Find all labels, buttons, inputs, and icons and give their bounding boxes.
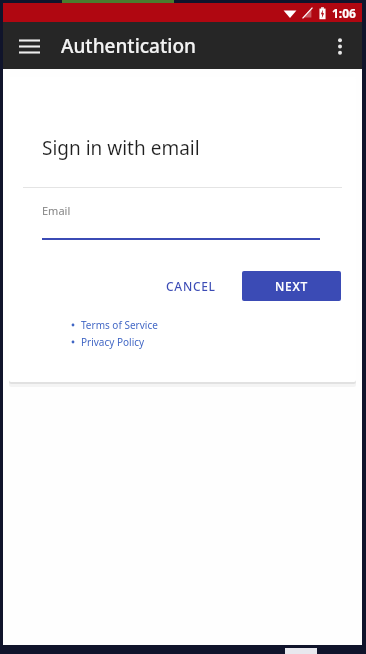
button[interactable]: Terms of Service (69, 318, 158, 332)
staticText: Authentication (61, 33, 196, 59)
staticText: Sign in with email (42, 135, 200, 161)
staticText: Privacy Policy (81, 335, 145, 349)
staticText: 1:06 (332, 5, 356, 21)
button[interactable]: More options (322, 28, 358, 64)
staticText: CANCEL (166, 278, 216, 294)
staticText: NEXT (275, 278, 308, 294)
button[interactable]: NEXT (242, 271, 341, 301)
button[interactable]: Open navigation menu (11, 28, 47, 64)
button[interactable]: CANCEL (153, 270, 229, 302)
button[interactable]: Privacy Policy (69, 335, 145, 349)
staticText: Email (42, 203, 71, 218)
staticText: Terms of Service (81, 318, 158, 332)
